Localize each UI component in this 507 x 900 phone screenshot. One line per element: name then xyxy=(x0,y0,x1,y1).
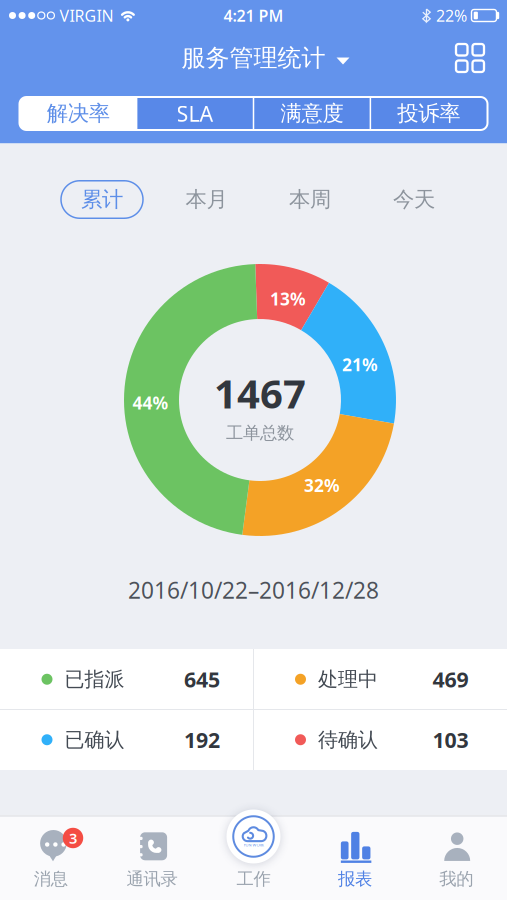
staticText: 处理中 xyxy=(318,667,378,692)
staticText: 待确认 xyxy=(318,727,378,752)
button[interactable]: SLA xyxy=(137,98,253,129)
staticText: 通讯录 xyxy=(127,868,178,890)
staticText: 192 xyxy=(184,726,220,754)
staticText: 已指派 xyxy=(64,667,124,692)
button[interactable]: 满意度 xyxy=(254,98,370,129)
staticText: 1467 xyxy=(214,366,306,419)
staticText: 消息 xyxy=(34,868,68,890)
button[interactable]: 报表 xyxy=(304,815,406,900)
button[interactable]: 服务管理统计 xyxy=(181,43,349,73)
staticText: YUN WORK xyxy=(243,842,263,848)
button[interactable]: 工作 xyxy=(203,815,304,900)
staticText: 我的 xyxy=(439,868,473,890)
staticText: 累计 xyxy=(81,186,123,213)
staticText: 工单总数 xyxy=(226,422,294,444)
button[interactable]: 3 xyxy=(0,815,101,900)
button[interactable]: 投诉率 xyxy=(371,98,486,129)
staticText: 44% xyxy=(132,391,168,414)
staticText: 21% xyxy=(342,353,378,376)
staticText: 服务管理统计 xyxy=(181,43,325,73)
staticText: 4:21 PM xyxy=(223,5,283,26)
staticText: 22% xyxy=(436,5,467,26)
staticText: 投诉率 xyxy=(397,100,460,127)
staticText: VIRGIN xyxy=(59,5,113,26)
button[interactable]: 工作 xyxy=(225,808,281,864)
staticText: 本周 xyxy=(289,186,331,213)
staticText: 469 xyxy=(432,665,468,693)
staticText: 103 xyxy=(432,726,468,754)
staticText: 工作 xyxy=(236,868,270,890)
staticText: 满意度 xyxy=(280,100,343,127)
staticText: 今天 xyxy=(393,186,435,213)
staticText: SLA xyxy=(177,99,214,128)
staticText: 32% xyxy=(304,474,340,497)
button[interactable]: 本周 xyxy=(269,181,351,218)
staticText: 已确认 xyxy=(64,727,124,752)
staticText: 13% xyxy=(270,287,306,310)
button[interactable]: 累计 xyxy=(61,181,143,218)
staticText: 3 xyxy=(69,828,77,848)
button[interactable]: 应用 xyxy=(456,44,484,72)
button[interactable]: 本月 xyxy=(165,181,247,218)
staticText: 本月 xyxy=(185,186,227,213)
staticText: 2016/10/22–2016/12/28 xyxy=(128,575,379,605)
button[interactable]: 解决率 xyxy=(20,98,136,129)
staticText: 645 xyxy=(184,665,220,693)
staticText: 解决率 xyxy=(47,100,110,127)
staticText: 报表 xyxy=(338,868,372,890)
button[interactable]: 通讯录 xyxy=(101,815,203,900)
button[interactable]: 今天 xyxy=(373,181,455,218)
button[interactable]: 我的 xyxy=(406,815,507,900)
